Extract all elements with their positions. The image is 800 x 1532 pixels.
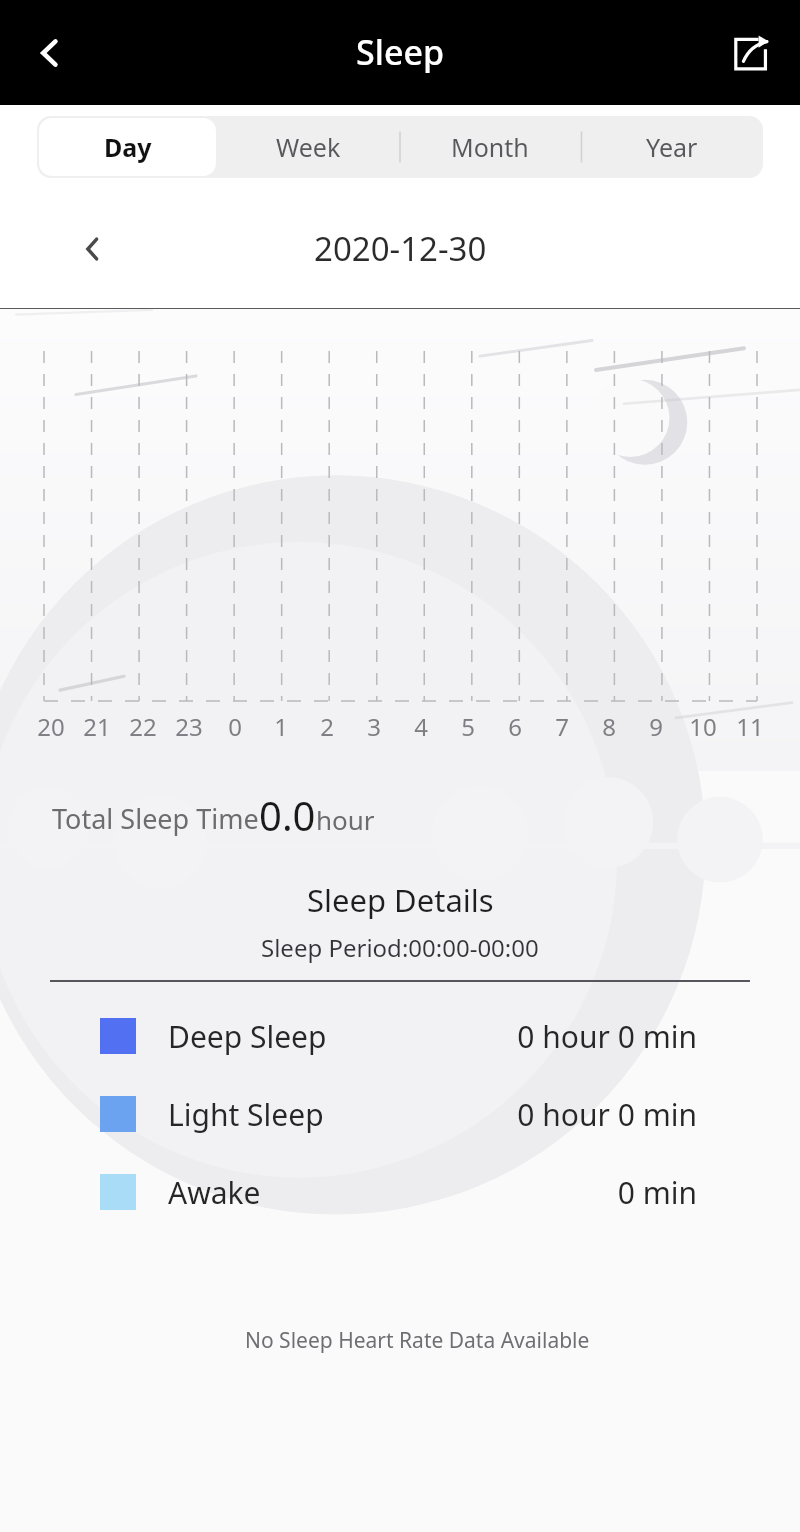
staticText: 2020-12-30 — [314, 226, 487, 271]
button[interactable]: Back — [14, 17, 86, 89]
button[interactable]: Share — [716, 18, 786, 88]
staticText: 6 — [508, 710, 522, 743]
button[interactable]: Month — [401, 118, 579, 176]
staticText: 1 — [274, 710, 288, 743]
staticText: No Sleep Heart Rate Data Available — [245, 1326, 590, 1355]
staticText: Sleep Period:00:00-00:00 — [261, 931, 539, 964]
staticText: 21 — [83, 710, 111, 743]
staticText: Month — [451, 130, 529, 164]
staticText: 7 — [555, 710, 569, 743]
staticText: Deep Sleep — [168, 1016, 327, 1057]
staticText: 10 — [689, 710, 717, 743]
staticText: 11 — [736, 710, 764, 743]
staticText: Awake — [168, 1172, 261, 1213]
button[interactable]: Awake — [0, 1166, 800, 1218]
staticText: Total Sleep Time — [52, 800, 259, 837]
staticText: 20 — [37, 710, 65, 743]
staticText: Sleep — [356, 29, 444, 75]
staticText: hour — [316, 802, 375, 837]
staticText: 0 min — [617, 1172, 697, 1213]
staticText: 0 hour 0 min — [517, 1094, 697, 1135]
staticText: 23 — [175, 710, 203, 743]
staticText: 3 — [367, 710, 381, 743]
button[interactable]: Year — [583, 118, 761, 176]
staticText: 22 — [129, 710, 157, 743]
button[interactable]: Deep Sleep — [0, 1010, 800, 1062]
staticText: 0.0 — [259, 788, 316, 842]
button[interactable]: Light Sleep — [0, 1088, 800, 1140]
staticText: Light Sleep — [168, 1094, 324, 1135]
staticText: Sleep Details — [307, 879, 494, 921]
button[interactable]: Previous day — [60, 216, 126, 282]
staticText: 4 — [414, 710, 428, 743]
staticText: Day — [104, 130, 152, 164]
staticText: Year — [646, 130, 698, 164]
staticText: 2 — [320, 710, 334, 743]
staticText: 8 — [602, 710, 616, 743]
staticText: 0 hour 0 min — [517, 1016, 697, 1057]
staticText: 5 — [461, 710, 475, 743]
button[interactable]: Day — [39, 118, 216, 176]
staticText: Week — [276, 130, 341, 164]
button[interactable]: Week — [220, 118, 397, 176]
staticText: 0 — [228, 710, 242, 743]
staticText: 9 — [649, 710, 663, 743]
